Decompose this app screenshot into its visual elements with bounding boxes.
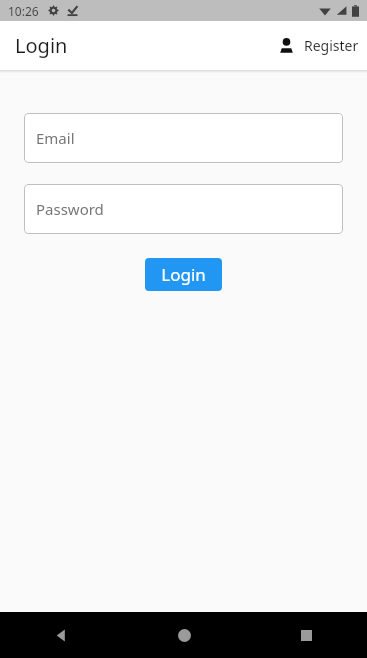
button[interactable]: Login [145, 258, 222, 291]
button[interactable]: Password [24, 184, 343, 234]
staticText: Login [15, 32, 68, 59]
staticText: Register [304, 36, 359, 55]
staticText: Password [36, 199, 104, 219]
button[interactable]: Email [24, 113, 343, 163]
staticText: Email [36, 128, 75, 148]
button[interactable]: Register [266, 28, 367, 63]
button[interactable]: Home [123, 612, 245, 658]
staticText: Login [161, 263, 206, 286]
staticText: 10:26 [8, 3, 39, 19]
button[interactable]: Back [0, 612, 123, 658]
button[interactable]: Recents [245, 612, 367, 658]
